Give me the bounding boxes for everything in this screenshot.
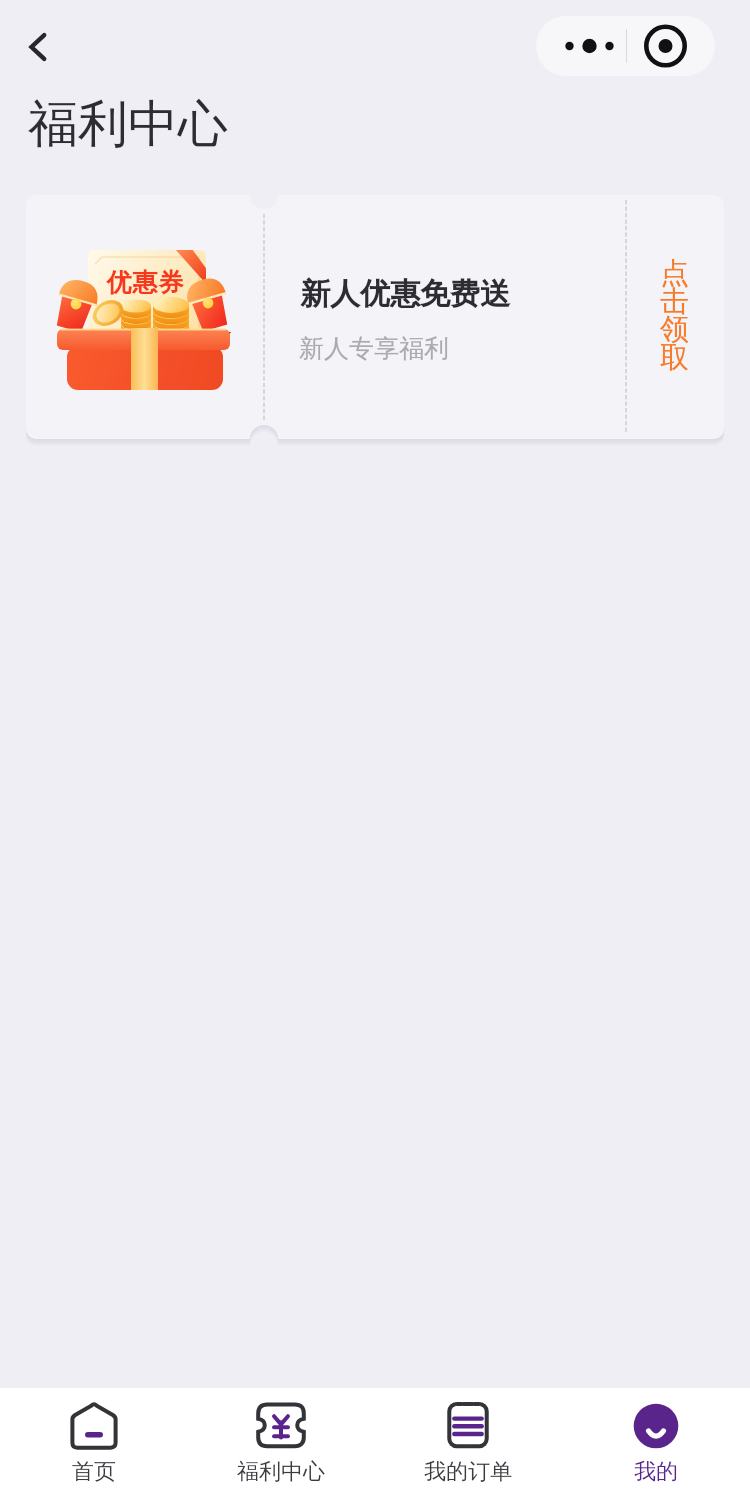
button[interactable]: 我的订单: [374, 1388, 562, 1500]
staticText: 新人专享福利: [299, 333, 449, 364]
staticText: 福利中心: [28, 93, 228, 156]
button[interactable]: 我的: [562, 1388, 750, 1500]
staticText: 新人优惠免费送: [300, 275, 510, 313]
staticText: 福利中心: [237, 1458, 325, 1486]
staticText: 优惠券: [106, 267, 184, 298]
staticText: 我的订单: [424, 1458, 512, 1486]
button[interactable]: More options: [536, 16, 626, 76]
staticText: 点击领取: [660, 255, 689, 376]
button[interactable]: Back: [13, 21, 65, 73]
staticText: 首页: [72, 1458, 116, 1486]
button[interactable]: 首页: [0, 1388, 187, 1500]
staticText: 我的: [634, 1458, 678, 1486]
button[interactable]: 优惠券: [26, 195, 724, 439]
button[interactable]: Close mini program: [627, 16, 715, 76]
button[interactable]: 福利中心: [187, 1388, 374, 1500]
